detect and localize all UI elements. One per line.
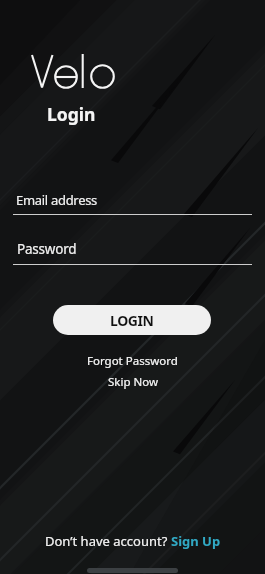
button[interactable]: LOGIN [53, 305, 211, 335]
button[interactable]: Sign Up [171, 532, 221, 550]
staticText: Login [47, 102, 96, 126]
staticText: Password [17, 240, 77, 258]
staticText: Don’t have account? [45, 532, 171, 550]
staticText: Email address [16, 191, 98, 209]
button[interactable]: Email address [13, 188, 252, 215]
button[interactable]: Skip Now [108, 374, 158, 390]
button[interactable]: Password [13, 238, 252, 265]
button[interactable]: Forgot Password [87, 353, 178, 369]
staticText: LOGIN [110, 311, 154, 330]
